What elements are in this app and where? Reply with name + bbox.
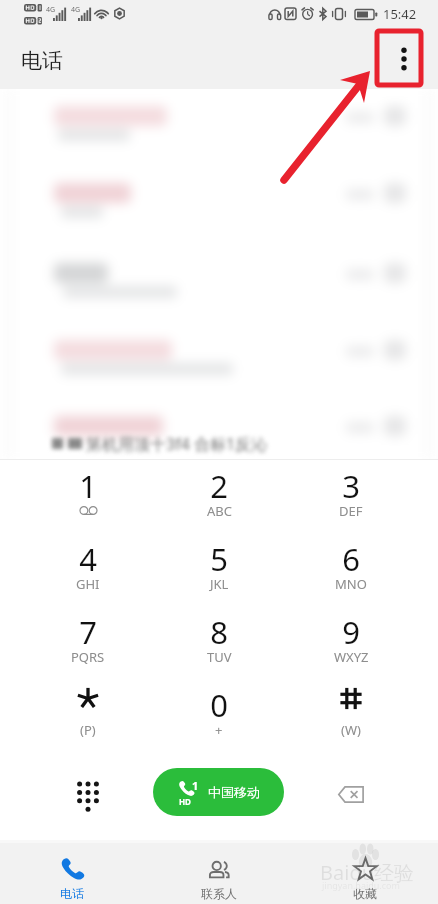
staticText: 4 xyxy=(79,538,97,580)
staticText: 联系人 xyxy=(201,886,237,901)
staticText: WXYZ xyxy=(334,648,369,666)
button[interactable]: 4 xyxy=(44,537,132,601)
staticText: 电话 xyxy=(60,886,84,901)
staticText: HD xyxy=(179,796,191,807)
button[interactable]: 联系人 xyxy=(159,857,279,904)
staticText: 1 xyxy=(79,465,97,507)
staticText: + xyxy=(215,721,223,739)
button[interactable]: Hide dialpad xyxy=(63,779,113,809)
button[interactable]: 0 xyxy=(175,683,263,747)
button[interactable]: 8 xyxy=(175,610,263,674)
staticText: 3 xyxy=(342,465,360,507)
staticText: 8 xyxy=(210,611,228,653)
button[interactable]: (W) xyxy=(307,683,395,747)
button[interactable]: More options xyxy=(380,35,428,83)
staticText: 7 xyxy=(79,611,97,653)
button[interactable]: 1 xyxy=(44,464,132,528)
staticText: GHI xyxy=(76,575,100,593)
button[interactable]: 5 xyxy=(175,537,263,601)
staticText: JKL xyxy=(210,575,229,593)
staticText: 4G xyxy=(71,5,81,15)
button[interactable]: 2 xyxy=(175,464,263,528)
staticText: 5 xyxy=(210,538,228,580)
staticText: 15:42 xyxy=(383,5,417,23)
button[interactable]: 1 xyxy=(153,768,284,816)
staticText: 中国移动 xyxy=(208,784,260,800)
button[interactable]: 收藏 xyxy=(305,857,425,904)
staticText: 1 xyxy=(192,778,199,793)
button[interactable]: 7 xyxy=(44,610,132,674)
button[interactable]: 6 xyxy=(307,537,395,601)
staticText: TUV xyxy=(207,648,232,666)
staticText: 0 xyxy=(210,684,228,726)
staticText: 6 xyxy=(342,538,360,580)
staticText: (W) xyxy=(341,721,361,739)
button[interactable]: 电话 xyxy=(12,857,132,904)
button[interactable]: 9 xyxy=(307,610,395,674)
staticText: DEF xyxy=(339,502,363,520)
button[interactable]: Delete xyxy=(326,779,376,809)
staticText: Baidu经验 xyxy=(320,859,415,886)
staticText: 4G xyxy=(46,5,56,15)
staticText: 2 xyxy=(210,465,228,507)
staticText: 电话 xyxy=(21,48,63,74)
staticText: PQRS xyxy=(71,648,105,666)
staticText: MNO xyxy=(335,575,367,593)
button[interactable]: (P) xyxy=(44,683,132,747)
staticText: 收藏 xyxy=(353,886,377,901)
staticText: ABC xyxy=(207,502,232,520)
staticText: (P) xyxy=(80,721,96,739)
staticText: 第机用顶十3f4 合标1反沁 xyxy=(86,433,268,455)
staticText: 9 xyxy=(342,611,360,653)
button[interactable]: 3 xyxy=(307,464,395,528)
staticText: jingyan.baidu.com xyxy=(322,879,400,891)
